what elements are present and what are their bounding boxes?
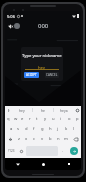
staticText: s [17,126,20,132]
button[interactable]: j [54,124,62,134]
button[interactable]: heya [54,106,74,114]
button[interactable]: k [62,124,70,134]
staticText: hey [38,65,46,71]
staticText: w [14,116,18,122]
staticText: he [41,108,46,113]
staticText: t [36,116,38,122]
staticText: j [57,126,59,132]
button[interactable]: p [73,114,81,124]
staticText: c [33,136,36,142]
button[interactable]: u [49,114,57,124]
staticText: k [65,126,68,132]
button[interactable]: t [33,114,41,124]
button[interactable]: b [46,134,54,144]
button[interactable]: g [38,124,46,134]
button[interactable]: y [41,114,49,124]
staticText: p [76,116,79,122]
button[interactable]: z [15,134,22,144]
button[interactable]: Home [31,158,56,170]
staticText: e [21,116,24,122]
staticText: i [60,116,62,122]
button[interactable]: v [38,134,46,144]
button[interactable]: o [65,114,73,124]
staticText: ACCEPT [26,73,37,77]
button[interactable]: d [22,124,30,134]
staticText: x [25,136,28,142]
staticText: . [62,148,64,154]
button[interactable]: Enter [70,147,78,155]
button[interactable]: a [8,124,15,134]
staticText: hey [19,108,25,113]
button[interactable]: he [33,106,53,114]
button[interactable]: c [30,134,38,144]
button[interactable]: x [22,134,30,144]
staticText: g [41,126,44,132]
staticText: l [73,126,75,132]
staticText: u [52,116,55,122]
staticText: m [64,136,68,142]
button[interactable]: CANCEL [45,72,59,78]
button[interactable]: Back [5,158,31,170]
staticText: h [49,126,52,132]
button[interactable]: q [5,114,12,124]
button[interactable]: Recents [56,158,81,170]
staticText: n [57,136,60,142]
button[interactable]: hey [12,106,32,114]
button[interactable]: ACCEPT [24,72,39,78]
staticText: v [41,136,44,142]
button[interactable]: e [19,114,26,124]
staticText: CANCEL [46,73,58,77]
button[interactable]: ?123 [6,144,17,158]
staticText: b [49,136,52,142]
button[interactable]: r [26,114,33,124]
staticText: 000 [38,22,49,30]
button[interactable]: Profile [14,23,20,29]
staticText: o [68,116,71,122]
staticText: Type your nickname [22,53,62,59]
button[interactable]: More suggestions [5,106,12,114]
staticText: a [10,126,13,132]
button[interactable]: l [70,124,78,134]
button[interactable]: Shift [5,134,15,144]
button[interactable]: Backspace [70,134,81,144]
button[interactable]: m [62,134,70,144]
staticText: 5:06 [7,14,15,19]
button[interactable]: Keyboard settings [74,106,81,114]
staticText: d [25,126,28,132]
button[interactable]: h [46,124,54,134]
button[interactable]: w [12,114,19,124]
button[interactable]: Emoji [17,144,25,158]
staticText: heya [60,108,68,113]
button[interactable]: i [57,114,65,124]
staticText: f [33,126,35,132]
button[interactable]: Mute [7,23,14,30]
staticText: z [18,136,20,142]
button[interactable]: s [15,124,22,134]
staticText: ?123 [8,149,15,153]
staticText: q [7,116,10,122]
staticText: y [44,116,47,122]
button[interactable]: n [54,134,62,144]
staticText: r [29,116,31,122]
button[interactable]: f [30,124,38,134]
